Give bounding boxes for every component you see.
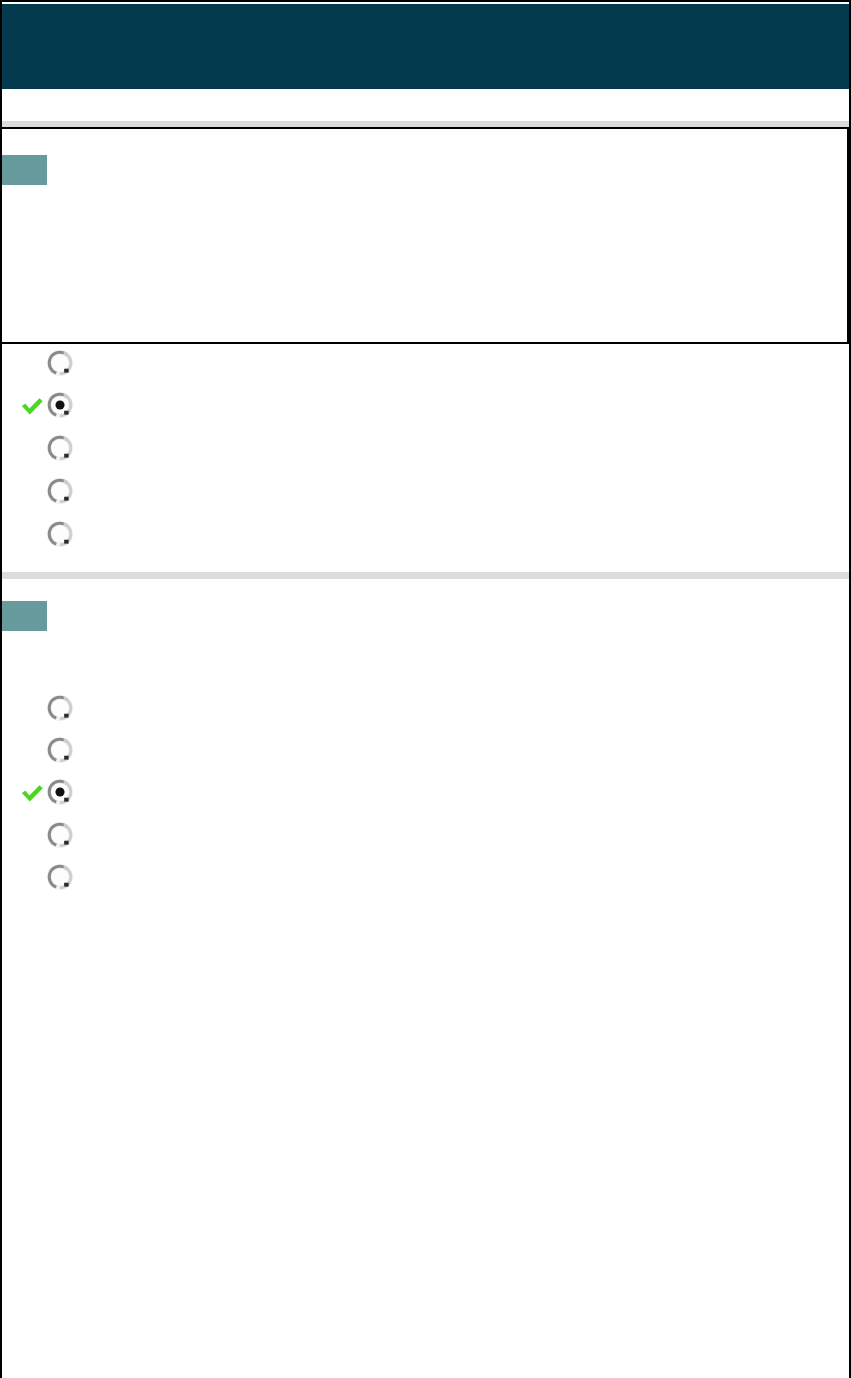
button[interactable]: Option bbox=[47, 478, 73, 504]
button[interactable]: Option bbox=[47, 822, 73, 848]
button[interactable]: Option bbox=[47, 521, 73, 547]
other: Correct answer bbox=[21, 397, 43, 416]
button[interactable]: Selected option bbox=[47, 779, 73, 805]
button[interactable]: Selected option bbox=[47, 392, 73, 418]
other: Correct answer bbox=[21, 784, 43, 803]
button[interactable]: Option bbox=[47, 864, 73, 890]
button[interactable]: Option bbox=[47, 435, 73, 461]
button[interactable]: Option bbox=[47, 737, 73, 763]
button[interactable]: Option bbox=[47, 695, 73, 721]
button[interactable]: Option bbox=[47, 350, 73, 376]
